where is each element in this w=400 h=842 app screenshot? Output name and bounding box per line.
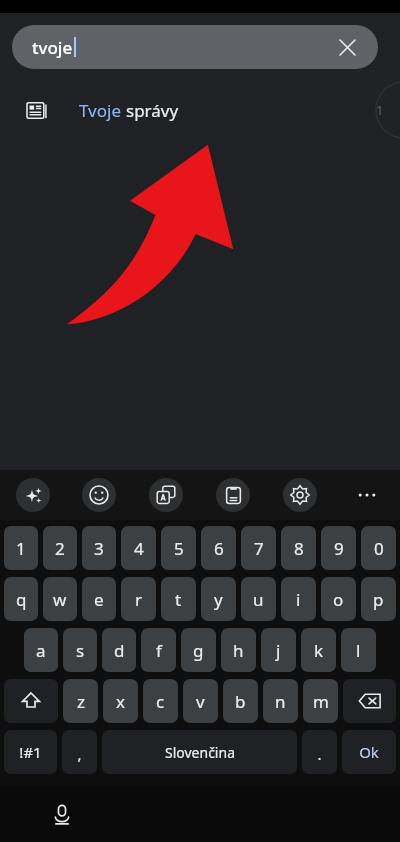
staticText: !#1 bbox=[19, 742, 42, 762]
staticText: 5 bbox=[174, 537, 184, 560]
staticText: 4 bbox=[134, 537, 144, 560]
staticText: y bbox=[214, 588, 223, 611]
button[interactable]: d bbox=[102, 628, 136, 672]
button[interactable]: w bbox=[43, 577, 77, 621]
button[interactable]: t bbox=[161, 577, 196, 621]
button[interactable]: y bbox=[201, 577, 236, 621]
button[interactable]: !#1 bbox=[4, 730, 57, 774]
staticText: l bbox=[356, 639, 361, 662]
staticText: i bbox=[296, 588, 301, 611]
button[interactable]: 6 bbox=[201, 526, 236, 570]
button[interactable]: q bbox=[4, 577, 38, 621]
button[interactable]: 1 bbox=[4, 526, 38, 570]
staticText: 7 bbox=[254, 537, 264, 560]
button[interactable] bbox=[343, 679, 396, 723]
staticText: t bbox=[175, 588, 182, 611]
staticText: a bbox=[36, 639, 46, 662]
staticText: x bbox=[116, 690, 125, 713]
button[interactable]: z bbox=[63, 679, 98, 723]
staticText: . bbox=[317, 744, 322, 764]
button[interactable]: . bbox=[302, 730, 337, 774]
button[interactable]: Tvoje bbox=[0, 83, 400, 137]
staticText: 1 bbox=[376, 101, 384, 119]
staticText: b bbox=[235, 690, 246, 713]
button[interactable]: h bbox=[221, 628, 256, 672]
staticText: d bbox=[114, 639, 125, 662]
staticText: o bbox=[333, 588, 344, 611]
staticText: q bbox=[16, 588, 27, 611]
button[interactable]: v bbox=[183, 679, 218, 723]
button[interactable]: f bbox=[141, 628, 176, 672]
staticText: 1 bbox=[16, 537, 26, 560]
staticText: v bbox=[196, 690, 205, 713]
button[interactable]: Emoji bbox=[82, 478, 116, 512]
button[interactable]: Clear search bbox=[330, 30, 364, 64]
staticText: j bbox=[276, 639, 281, 662]
button[interactable]: 3 bbox=[82, 526, 116, 570]
button[interactable]: More options bbox=[350, 478, 384, 512]
button[interactable]: l bbox=[341, 628, 376, 672]
staticText: w bbox=[53, 588, 67, 611]
button[interactable]: s bbox=[63, 628, 97, 672]
button[interactable]: tvoje bbox=[12, 25, 378, 69]
button[interactable]: x bbox=[103, 679, 138, 723]
staticText: g bbox=[193, 639, 204, 662]
staticText: z bbox=[77, 690, 85, 713]
button[interactable]: 2 bbox=[43, 526, 77, 570]
button[interactable]: , bbox=[62, 730, 97, 774]
staticText: 0 bbox=[374, 537, 384, 560]
button[interactable]: 9 bbox=[321, 526, 356, 570]
staticText: 2 bbox=[55, 537, 65, 560]
button[interactable]: e bbox=[82, 577, 116, 621]
button[interactable]: Settings bbox=[283, 478, 317, 512]
staticText: n bbox=[275, 690, 286, 713]
button[interactable]: Ok bbox=[342, 730, 396, 774]
staticText: m bbox=[313, 690, 329, 713]
button[interactable]: 5 bbox=[161, 526, 196, 570]
staticText: c bbox=[156, 690, 165, 713]
button[interactable]: Voice input bbox=[42, 795, 82, 835]
button[interactable]: Magic compose bbox=[16, 478, 50, 512]
staticText: p bbox=[373, 588, 384, 611]
button[interactable]: 4 bbox=[121, 526, 156, 570]
staticText: 8 bbox=[294, 537, 304, 560]
button[interactable]: p bbox=[361, 577, 396, 621]
button[interactable]: c bbox=[143, 679, 178, 723]
button[interactable]: j bbox=[261, 628, 296, 672]
staticText: Ok bbox=[359, 742, 379, 762]
staticText: k bbox=[314, 639, 324, 662]
staticText: e bbox=[94, 588, 104, 611]
button[interactable]: Translate bbox=[149, 478, 183, 512]
staticText: tvoje bbox=[32, 36, 73, 59]
button[interactable]: Clipboard bbox=[216, 478, 250, 512]
button[interactable]: b bbox=[223, 679, 258, 723]
staticText: h bbox=[233, 639, 244, 662]
staticText: u bbox=[253, 588, 264, 611]
button[interactable]: Slovenčina bbox=[102, 730, 297, 774]
button[interactable]: r bbox=[121, 577, 156, 621]
button[interactable] bbox=[4, 679, 58, 723]
staticText: Slovenčina bbox=[165, 743, 235, 762]
staticText: 9 bbox=[334, 537, 344, 560]
button[interactable]: m bbox=[303, 679, 338, 723]
button[interactable]: 0 bbox=[361, 526, 396, 570]
button[interactable]: i bbox=[281, 577, 316, 621]
button[interactable]: o bbox=[321, 577, 356, 621]
staticText: s bbox=[76, 639, 85, 662]
button[interactable]: g bbox=[181, 628, 216, 672]
staticText: 3 bbox=[94, 537, 104, 560]
staticText: Tvoje bbox=[79, 99, 126, 122]
button[interactable]: a bbox=[24, 628, 58, 672]
button[interactable]: 8 bbox=[281, 526, 316, 570]
staticText: f bbox=[156, 639, 162, 662]
button[interactable]: 7 bbox=[241, 526, 276, 570]
button[interactable]: u bbox=[241, 577, 276, 621]
button[interactable]: n bbox=[263, 679, 298, 723]
button[interactable]: k bbox=[301, 628, 336, 672]
staticText: r bbox=[135, 588, 143, 611]
staticText: , bbox=[77, 744, 82, 764]
staticText: 6 bbox=[214, 537, 224, 560]
staticText: správy bbox=[126, 99, 179, 122]
